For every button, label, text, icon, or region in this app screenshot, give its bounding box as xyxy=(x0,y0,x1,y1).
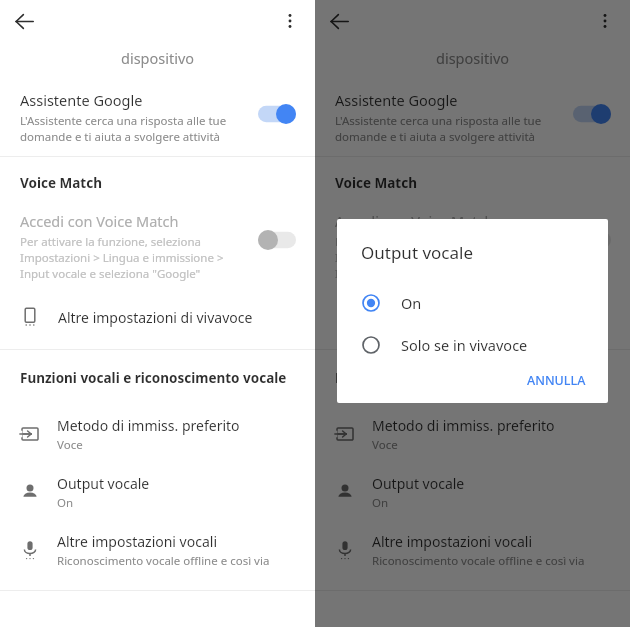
button[interactable]: Back xyxy=(321,3,357,39)
staticText: Voice Match xyxy=(335,174,417,192)
button[interactable]: ANNULLA xyxy=(519,366,594,391)
staticText: Output vocale xyxy=(57,474,150,493)
staticText: Altre impostazioni vocali xyxy=(372,532,532,551)
button[interactable]: Metodo di immiss. preferito xyxy=(315,405,630,463)
button[interactable]: Assistente Google xyxy=(0,88,315,150)
staticText: Voce xyxy=(372,437,398,453)
staticText: Metodo di immiss. preferito xyxy=(57,416,240,435)
button[interactable]: Output vocale xyxy=(315,463,630,521)
staticText: Funzioni vocali e riconoscimento vocale xyxy=(20,369,287,387)
button[interactable]: Metodo di immiss. preferito xyxy=(0,405,315,463)
button[interactable]: Altre impostazioni vocali xyxy=(0,521,315,579)
staticText: Altre impostazioni di vivavoce xyxy=(58,308,253,327)
button[interactable]: Solo se in vivavoce xyxy=(337,324,608,366)
staticText: Impostazioni > Lingua e immissione > xyxy=(20,250,224,266)
button[interactable]: Altre impostazioni di vivavoce xyxy=(315,295,630,339)
staticText: Per attivare la funzione, seleziona xyxy=(20,234,201,250)
staticText: Riconoscimento vocale offline e così via xyxy=(57,553,270,569)
staticText: ANNULLA xyxy=(527,372,586,385)
button[interactable]: Accedi con Voice Match xyxy=(0,209,315,295)
staticText: Assistente Google xyxy=(20,90,143,110)
staticText: L'Assistente cerca una risposta alle tue xyxy=(335,113,542,129)
staticText: Solo se in vivavoce xyxy=(401,335,528,355)
staticText: Per attivare la funzione, seleziona xyxy=(335,234,516,250)
button[interactable]: Back xyxy=(6,3,42,39)
staticText: Output vocale xyxy=(361,241,474,264)
button[interactable]: Altre impostazioni di vivavoce xyxy=(0,295,315,339)
button[interactable]: Assistente Google xyxy=(315,88,630,150)
staticText: Voice Match xyxy=(20,174,102,192)
button[interactable]: On xyxy=(337,282,608,324)
staticText: Voce xyxy=(57,437,83,453)
staticText: Metodo di immiss. preferito xyxy=(372,416,555,435)
button[interactable]: Altre impostazioni vocali xyxy=(315,521,630,579)
staticText: On xyxy=(57,495,74,511)
staticText: On xyxy=(372,495,389,511)
staticText: dispositivo xyxy=(436,48,510,68)
staticText: Accedi con Voice Match xyxy=(335,211,494,231)
staticText: Impostazioni > Lingua e immissione > xyxy=(335,250,539,266)
staticText: L'Assistente cerca una risposta alle tue xyxy=(20,113,227,129)
staticText: Assistente Google xyxy=(335,90,458,110)
button[interactable]: Accedi con Voice Match xyxy=(315,209,630,295)
staticText: domande e ti aiuta a svolgere attività xyxy=(335,129,535,145)
staticText: Output vocale xyxy=(372,474,465,493)
staticText: Accedi con Voice Match xyxy=(20,211,179,231)
button[interactable]: Output vocale xyxy=(0,463,315,521)
staticText: On xyxy=(401,293,422,313)
staticText: domande e ti aiuta a svolgere attività xyxy=(20,129,220,145)
button[interactable]: More options xyxy=(272,3,308,39)
staticText: Altre impostazioni vocali xyxy=(57,532,217,551)
staticText: dispositivo xyxy=(121,48,195,68)
staticText: Input vocale e seleziona "Google" xyxy=(335,266,516,282)
button[interactable]: More options xyxy=(587,3,623,39)
staticText: Riconoscimento vocale offline e così via xyxy=(372,553,585,569)
staticText: Input vocale e seleziona "Google" xyxy=(20,266,201,282)
staticText: Altre impostazioni di vivavoce xyxy=(373,308,568,327)
staticText: Funzioni vocali e riconoscimento vocale xyxy=(335,369,602,387)
